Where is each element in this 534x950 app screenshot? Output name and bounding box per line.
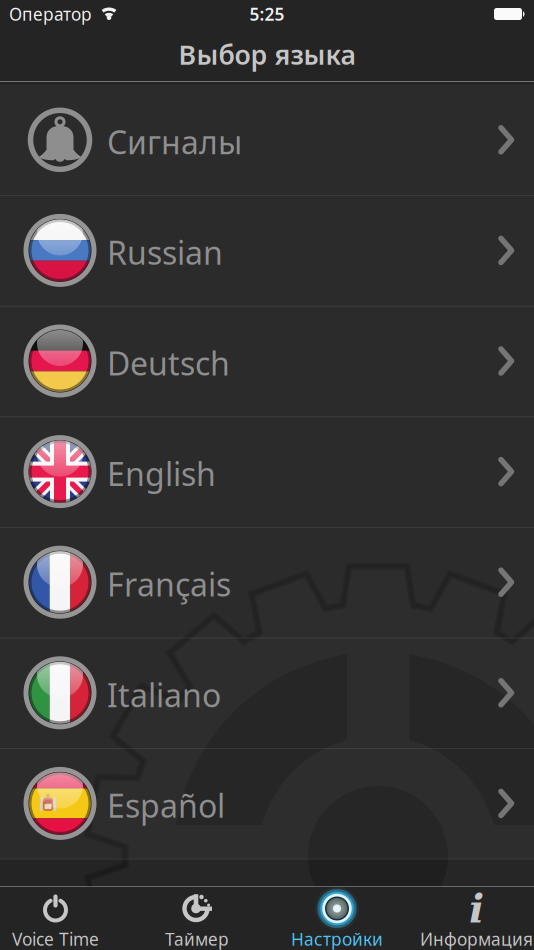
button[interactable]: Сигналы (0, 84, 534, 195)
staticText: Таймер (165, 927, 229, 950)
staticText: Russian (107, 231, 223, 274)
button[interactable]: Информация (407, 887, 534, 950)
staticText: Информация (420, 927, 533, 950)
staticText: Оператор (9, 2, 92, 25)
button[interactable]: Voice Time (0, 887, 127, 950)
staticText: English (107, 452, 216, 495)
staticText: 5:25 (249, 2, 284, 25)
staticText: Deutsch (107, 342, 230, 384)
button[interactable]: Настройки (267, 887, 407, 950)
staticText: Сигналы (107, 121, 242, 163)
button[interactable]: Russian (0, 195, 534, 306)
button[interactable]: Таймер (127, 887, 267, 950)
staticText: Voice Time (12, 927, 99, 950)
button[interactable]: Français (0, 527, 534, 637)
staticText: Italiano (107, 674, 221, 716)
staticText: Español (107, 784, 225, 827)
staticText: Français (107, 563, 231, 605)
button[interactable]: Español (0, 748, 534, 859)
button[interactable]: English (0, 416, 534, 527)
staticText: Выбор языка (178, 37, 355, 72)
staticText: Настройки (291, 927, 383, 950)
button[interactable]: Italiano (0, 637, 534, 748)
staticText: i (469, 885, 484, 932)
button[interactable]: Deutsch (0, 306, 534, 416)
